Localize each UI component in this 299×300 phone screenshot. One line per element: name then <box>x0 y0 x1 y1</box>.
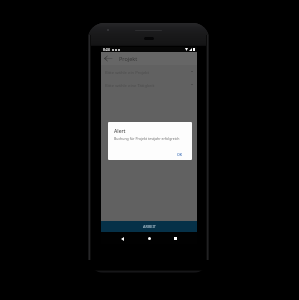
button[interactable]: Recents <box>171 234 180 243</box>
staticText: Bitte wähle eine Tätigkeit <box>105 83 155 89</box>
staticText: Buchung für Projekt testjahr erfolgreich <box>114 136 180 141</box>
button[interactable]: Back <box>118 234 127 243</box>
button[interactable]: OK <box>174 150 186 159</box>
staticText: Bitte wähle ein Projekt <box>105 70 150 76</box>
staticText: 8:24 <box>103 47 110 52</box>
button[interactable]: Home <box>145 234 154 243</box>
staticText: Projekt <box>119 55 138 62</box>
staticText: ARBEIT <box>143 224 156 229</box>
staticText: Alert <box>114 128 126 135</box>
button[interactable]: Back <box>103 54 112 63</box>
button[interactable]: ARBEIT <box>101 221 197 232</box>
staticText: OK <box>177 152 183 157</box>
